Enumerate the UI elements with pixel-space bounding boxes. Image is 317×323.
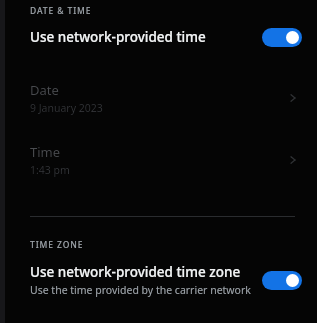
- button[interactable]: Time: [0, 137, 317, 183]
- staticText: 1:43 pm: [30, 163, 70, 177]
- staticText: Date: [30, 81, 59, 99]
- staticText: Time: [30, 143, 61, 161]
- button[interactable]: Use network-provided time: [0, 17, 317, 57]
- staticText: DATE & TIME: [30, 5, 92, 17]
- button[interactable]: Use network-provided time zone: [0, 263, 317, 297]
- staticText: 9 January 2023: [30, 101, 103, 115]
- staticText: Use the time provided by the carrier net…: [30, 283, 251, 297]
- staticText: TIME ZONE: [30, 239, 84, 251]
- staticText: Use network-provided time: [30, 28, 206, 46]
- staticText: Use network-provided time zone: [30, 263, 241, 281]
- button[interactable]: Date: [0, 75, 317, 121]
